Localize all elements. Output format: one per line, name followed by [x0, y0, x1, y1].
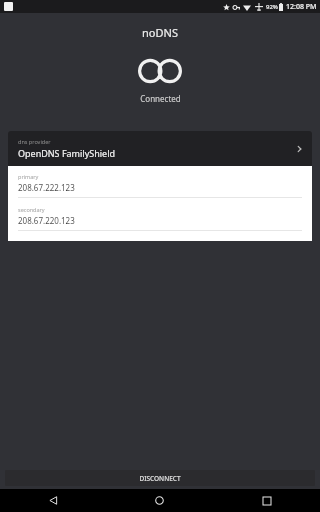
button[interactable]: Home: [106, 489, 213, 512]
button[interactable]: DISCONNECT: [5, 470, 315, 486]
staticText: primary: [18, 173, 39, 180]
staticText: dns provider: [18, 138, 51, 145]
staticText: secondary: [18, 206, 45, 213]
button[interactable]: dns provider: [8, 131, 312, 166]
staticText: OpenDNS FamilyShield: [18, 147, 116, 159]
staticText: Connected: [140, 93, 181, 104]
staticText: 12:08 PM: [286, 2, 317, 12]
button[interactable]: Recent apps: [213, 489, 320, 512]
other: Choose DNS provider: [294, 144, 304, 154]
staticText: 208.67.222.123: [18, 182, 75, 193]
button[interactable]: Back: [0, 489, 106, 512]
staticText: 92%: [266, 3, 278, 11]
button[interactable]: primary: [18, 173, 302, 198]
staticText: noDNS: [142, 25, 178, 40]
staticText: DISCONNECT: [139, 474, 181, 483]
staticText: 208.67.220.123: [18, 215, 75, 226]
button[interactable]: secondary: [18, 206, 302, 231]
